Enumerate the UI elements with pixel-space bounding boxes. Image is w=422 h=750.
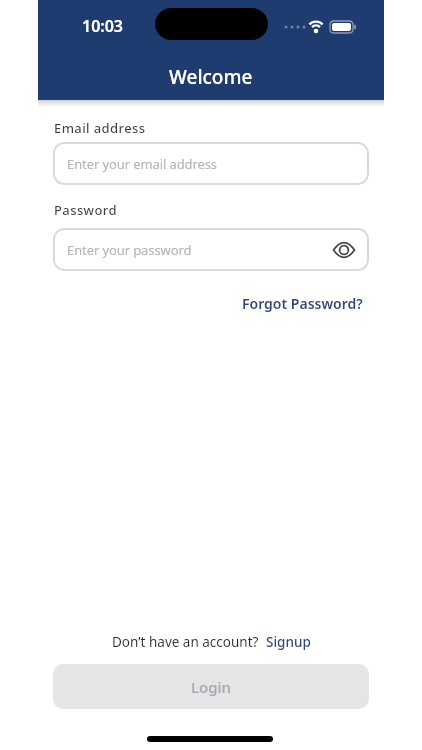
staticText: Don’t have an account? bbox=[112, 633, 259, 651]
staticText: Email address bbox=[54, 119, 146, 137]
staticText: Welcome bbox=[169, 64, 253, 90]
staticText: Enter your password bbox=[67, 241, 192, 259]
button[interactable]: Forgot Password? bbox=[242, 294, 363, 313]
button[interactable]: Enter your email address bbox=[53, 142, 369, 185]
button[interactable] bbox=[327, 233, 361, 267]
staticText: Enter your email address bbox=[67, 155, 217, 173]
button[interactable]: Signup bbox=[259, 633, 311, 651]
staticText: Login bbox=[191, 677, 231, 697]
button[interactable]: Login bbox=[53, 664, 369, 709]
button[interactable]: Enter your password bbox=[53, 228, 369, 271]
staticText: Password bbox=[54, 201, 117, 219]
staticText: 10:03 bbox=[82, 15, 124, 37]
